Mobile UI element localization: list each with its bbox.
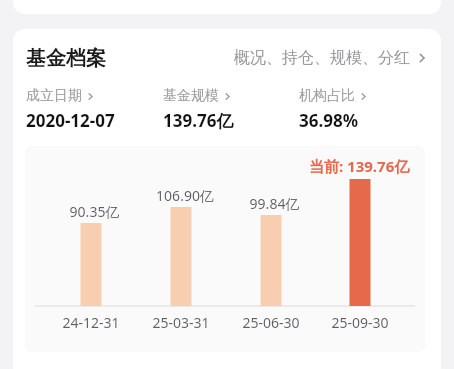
staticText: 25-09-30 <box>323 313 397 332</box>
staticText: 概况、持仓、规模、分红 <box>234 48 410 68</box>
staticText: 24-12-31 <box>54 313 128 332</box>
staticText: 机构占比 <box>299 87 355 105</box>
button[interactable]: 成立日期 <box>26 87 163 132</box>
staticText: 当前: 139.76亿 <box>309 156 410 176</box>
button[interactable]: 基金规模 <box>163 87 299 132</box>
staticText: 139.76亿 <box>163 109 234 132</box>
staticText: 99.84亿 <box>249 194 300 213</box>
staticText: 25-06-30 <box>234 313 308 332</box>
staticText: 90.35亿 <box>69 202 120 221</box>
staticText: 106.90亿 <box>156 186 214 205</box>
button[interactable]: 当前: 139.76亿 <box>25 146 425 352</box>
staticText: 基金档案 <box>26 46 106 71</box>
staticText: 成立日期 <box>26 87 82 105</box>
staticText: 25-03-31 <box>144 313 218 332</box>
staticText: 基金规模 <box>163 87 219 105</box>
staticText: 2020-12-07 <box>26 109 115 132</box>
button[interactable]: 机构占比 <box>299 87 428 132</box>
staticText: 36.98% <box>299 109 359 132</box>
button[interactable]: 基金档案 <box>13 29 441 87</box>
